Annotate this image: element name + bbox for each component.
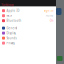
button[interactable]: General: [0, 26, 56, 31]
staticText: Display: [6, 31, 15, 35]
button[interactable]: Sounds: [0, 36, 56, 41]
button[interactable]: Bluetooth: [0, 18, 56, 23]
staticText: Sounds: [6, 36, 16, 40]
staticText: Settings: [1, 2, 14, 7]
staticText: On: [50, 19, 54, 22]
staticText: Wi-Fi: [6, 14, 12, 17]
staticText: Apple ID: [6, 9, 19, 12]
staticText: Privacy: [6, 41, 14, 45]
button[interactable]: Apple ID: [0, 8, 56, 13]
staticText: Sign In: [44, 9, 54, 12]
staticText: General: [6, 26, 17, 30]
button[interactable]: Privacy: [0, 41, 56, 46]
staticText: Bluetooth: [6, 19, 21, 22]
button[interactable]: Display: [0, 31, 56, 36]
staticText: Home: [46, 14, 54, 17]
button[interactable]: Wi-Fi: [0, 13, 56, 18]
